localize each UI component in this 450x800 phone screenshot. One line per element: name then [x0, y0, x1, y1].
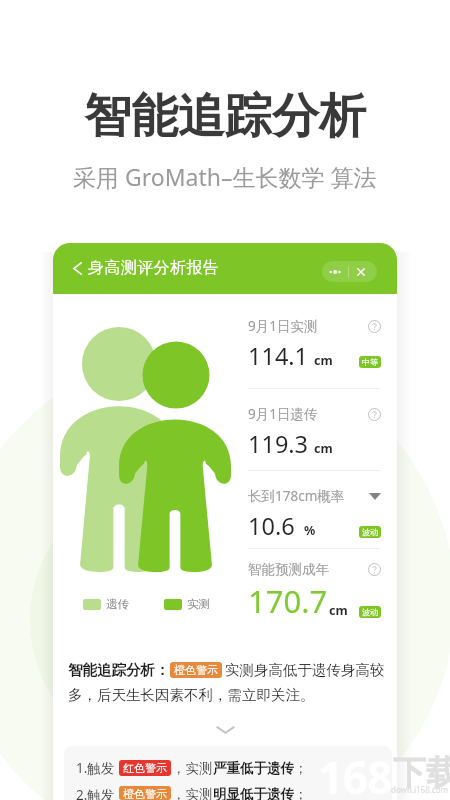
staticText: ；: [294, 760, 308, 777]
staticText: cm: [314, 440, 333, 457]
button[interactable]: 智能预测成年: [248, 549, 381, 633]
button[interactable]: 2.触发: [76, 786, 308, 800]
other: 说明: [368, 320, 381, 333]
other: 说明: [368, 408, 381, 421]
staticText: 9月1日实测: [248, 317, 318, 335]
staticText: 采用 GroMath–生长数学 算法: [73, 161, 377, 192]
staticText: 实测: [187, 597, 210, 611]
other: 说明: [368, 563, 381, 576]
staticText: 身高测评分析报告: [88, 258, 220, 278]
staticText: 119.3: [248, 428, 309, 460]
staticText: 114.1: [248, 340, 309, 372]
staticText: 下载: [393, 752, 450, 794]
staticText: 长到178cm概率: [248, 487, 345, 505]
staticText: 严重低于遗传: [213, 760, 294, 777]
staticText: 波动: [362, 607, 378, 617]
staticText: 明显低于遗传: [213, 786, 294, 800]
button[interactable]: 长到178cm概率: [248, 471, 381, 548]
staticText: 智能追踪分析: [84, 87, 366, 146]
staticText: 9月1日遗传: [248, 405, 318, 423]
staticText: cm: [314, 352, 333, 369]
staticText: ，实测: [172, 760, 213, 777]
staticText: 橙色警示: [123, 787, 167, 799]
staticText: 智能追踪分析：: [68, 661, 170, 679]
button[interactable]: 更多和关闭: [322, 261, 377, 282]
button[interactable]: 9月1日遗传: [248, 389, 381, 470]
staticText: 波动: [362, 527, 378, 537]
staticText: 实测身高低于遗传身高较: [225, 661, 385, 679]
other: 展开选项: [369, 493, 381, 500]
staticText: ；: [294, 786, 308, 800]
staticText: 168: [318, 747, 393, 800]
staticText: 10.6: [248, 510, 295, 542]
staticText: 红色警示: [123, 761, 167, 775]
button[interactable]: 返回: [65, 256, 89, 280]
staticText: 170.7: [248, 580, 328, 622]
staticText: 遗传: [106, 597, 129, 611]
staticText: down.i168.com: [391, 784, 449, 795]
staticText: 1.触发: [76, 759, 115, 777]
staticText: 多，后天生长因素不利，需立即关注。: [68, 686, 315, 704]
button[interactable]: 实测: [164, 597, 210, 611]
staticText: ，实测: [172, 786, 213, 800]
staticText: cm: [329, 602, 348, 619]
button[interactable]: 9月1日实测: [248, 294, 381, 388]
staticText: 橙色警示: [174, 663, 218, 677]
staticText: 智能预测成年: [248, 561, 329, 578]
other: 展开: [216, 726, 235, 734]
staticText: %: [304, 522, 316, 539]
button[interactable]: 1.触发: [76, 759, 308, 777]
staticText: 2.触发: [76, 786, 115, 800]
staticText: 中等: [362, 357, 378, 367]
button[interactable]: 遗传: [83, 597, 129, 611]
